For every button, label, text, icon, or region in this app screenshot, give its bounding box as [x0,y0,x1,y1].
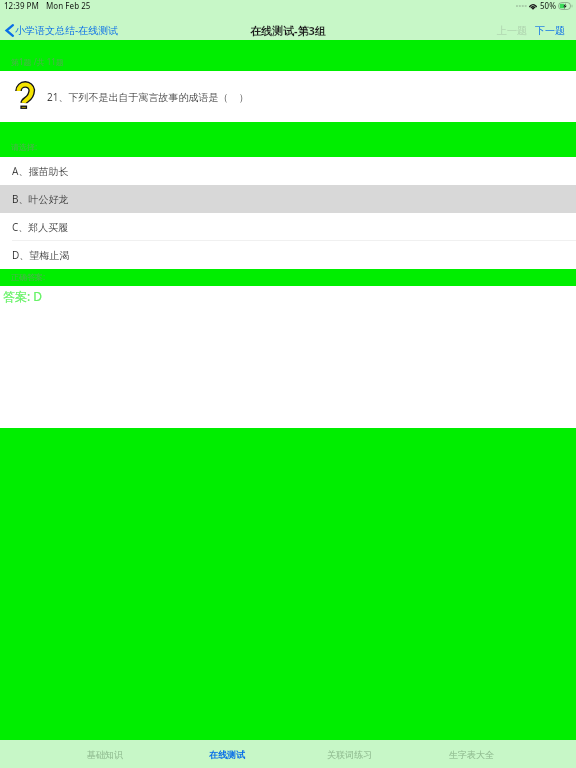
staticText: 在线测试 [209,749,245,760]
button[interactable]: 关联词练习 [288,740,410,768]
button[interactable]: 上一题 [495,24,529,37]
staticText: C、郑人买履 [12,220,69,234]
staticText: A、揠苗助长 [12,164,69,178]
staticText: 答案: D [3,288,43,304]
staticText: B、叶公好龙 [12,192,69,206]
staticText: 请选择: [11,141,38,152]
button[interactable]: C、郑人买履 [0,213,576,241]
staticText: 21、下列不是出自于寓言故事的成语是（ ） [47,90,249,104]
staticText: 基础知识 [87,749,123,760]
button[interactable]: 下一题 [533,24,567,37]
staticText: 第1题 /共 11题 [11,56,64,67]
button[interactable]: A、揠苗助长 [0,157,576,185]
staticText: 关联词练习 [327,749,372,760]
button[interactable]: B、叶公好龙 [0,185,576,213]
staticText: 12:39 PM [4,0,39,11]
staticText: 50% [540,0,556,11]
staticText: Mon Feb 25 [46,0,91,11]
staticText: 上一题 [497,24,527,37]
button[interactable]: 生字表大全 [410,740,532,768]
staticText: 小学语文总结-在线测试 [15,23,119,37]
staticText: 在线测试-第3组 [250,23,326,38]
staticText: D、望梅止渴 [12,248,70,262]
staticText: 下一题 [535,24,565,37]
staticText: 生字表大全 [449,749,494,760]
button[interactable]: 小学语文总结-在线测试 [0,23,119,37]
button[interactable]: 在线测试 [166,740,288,768]
button[interactable]: D、望梅止渴 [0,241,576,269]
button[interactable]: 基础知识 [44,740,166,768]
staticText: 正确答案: [11,271,46,282]
